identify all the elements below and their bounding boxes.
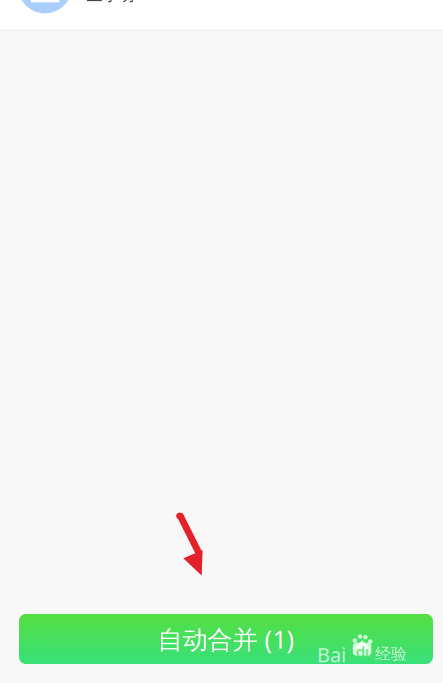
staticText: 经验 bbox=[375, 644, 407, 664]
button[interactable]: 自动合并 (1) bbox=[19, 614, 433, 664]
button[interactable] bbox=[18, 0, 72, 13]
staticText: Bai bbox=[317, 641, 346, 668]
staticText: 王小明 bbox=[86, 0, 134, 5]
staticText: 自动合并 (1) bbox=[157, 622, 294, 656]
staticText: du bbox=[356, 642, 374, 661]
